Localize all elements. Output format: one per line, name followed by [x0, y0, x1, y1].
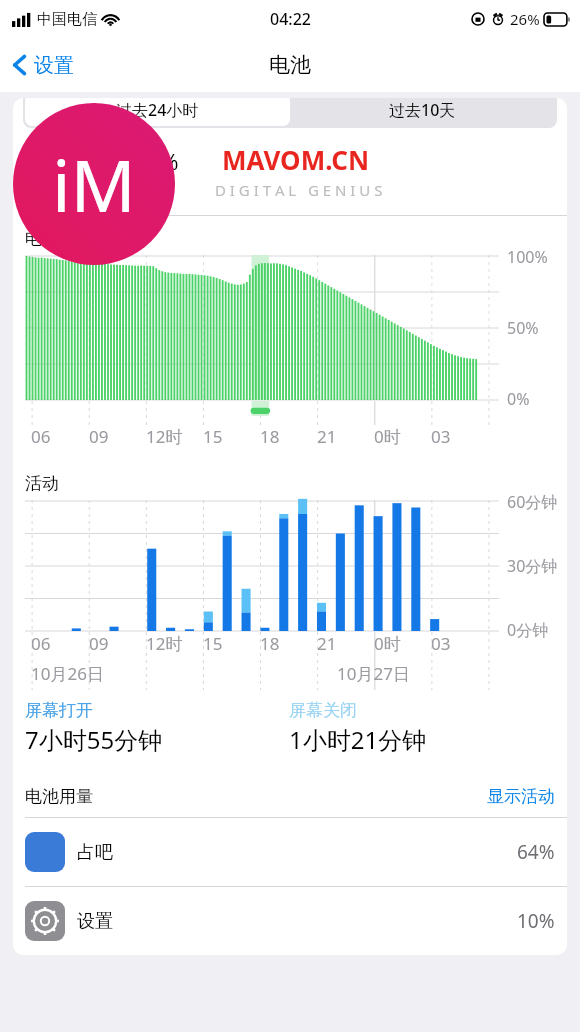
button[interactable]: 过去10天	[290, 98, 555, 126]
staticText: 04:22	[270, 8, 311, 30]
staticText: 100%	[507, 246, 548, 268]
button[interactable]: 占吧	[13, 818, 567, 886]
staticText: 60分钟	[507, 491, 558, 513]
staticText: 26%	[510, 9, 540, 29]
staticText: 0时	[374, 425, 401, 448]
staticText: 15	[203, 632, 223, 655]
staticText: 10月26日	[31, 662, 104, 685]
staticText: 30分钟	[507, 555, 558, 577]
staticText: 过去24小时	[116, 99, 199, 121]
staticText: 09	[89, 632, 109, 655]
staticText: 12时	[146, 632, 183, 655]
staticText: 0分钟	[507, 619, 549, 641]
staticText: 0时	[374, 632, 401, 655]
button[interactable]: 显示活动	[487, 786, 555, 807]
staticText: iM	[52, 135, 136, 233]
staticText: 显示活动	[487, 786, 555, 807]
staticText: 1小时21分钟	[289, 723, 427, 756]
staticText: MAVOM.CN	[222, 142, 370, 177]
staticText: 21	[317, 632, 337, 655]
staticText: 设置	[34, 53, 74, 78]
staticText: 10%	[517, 908, 555, 934]
staticText: 活动	[25, 473, 59, 494]
staticText: 21	[317, 425, 337, 448]
staticText: 7小时55分钟	[25, 723, 163, 756]
staticText: 10月27日	[337, 662, 410, 685]
staticText: 06	[31, 425, 51, 448]
staticText: 占吧	[77, 841, 113, 864]
staticText: 上次充电至95%	[25, 146, 179, 176]
staticText: 设置	[77, 910, 113, 933]
staticText: 屏幕关闭	[289, 700, 357, 721]
staticText: 09	[89, 425, 109, 448]
staticText: 0%	[507, 388, 530, 410]
staticText: 18	[260, 632, 280, 655]
button[interactable]: 过去24小时	[25, 98, 290, 126]
staticText: 电池电量	[25, 228, 93, 249]
staticText: 过去10天	[389, 99, 456, 121]
staticText: D I G I T A L G E N I U S	[215, 180, 383, 200]
staticText: 19:30	[64, 180, 108, 203]
button[interactable]: 设置	[13, 887, 567, 955]
staticText: 50%	[507, 317, 539, 339]
staticText: 电池用量	[25, 786, 93, 807]
staticText: 06	[31, 632, 51, 655]
staticText: 15	[203, 425, 223, 448]
staticText: 12时	[146, 425, 183, 448]
staticText: 电池	[269, 52, 311, 78]
staticText: 03	[431, 425, 451, 448]
staticText: 周二	[25, 180, 64, 203]
staticText: 中国电信	[37, 10, 97, 29]
staticText: 18	[260, 425, 280, 448]
staticText: 03	[431, 632, 451, 655]
staticText: 64%	[517, 839, 555, 865]
button[interactable]: 设置	[0, 46, 86, 84]
staticText: 屏幕打开	[25, 700, 93, 721]
